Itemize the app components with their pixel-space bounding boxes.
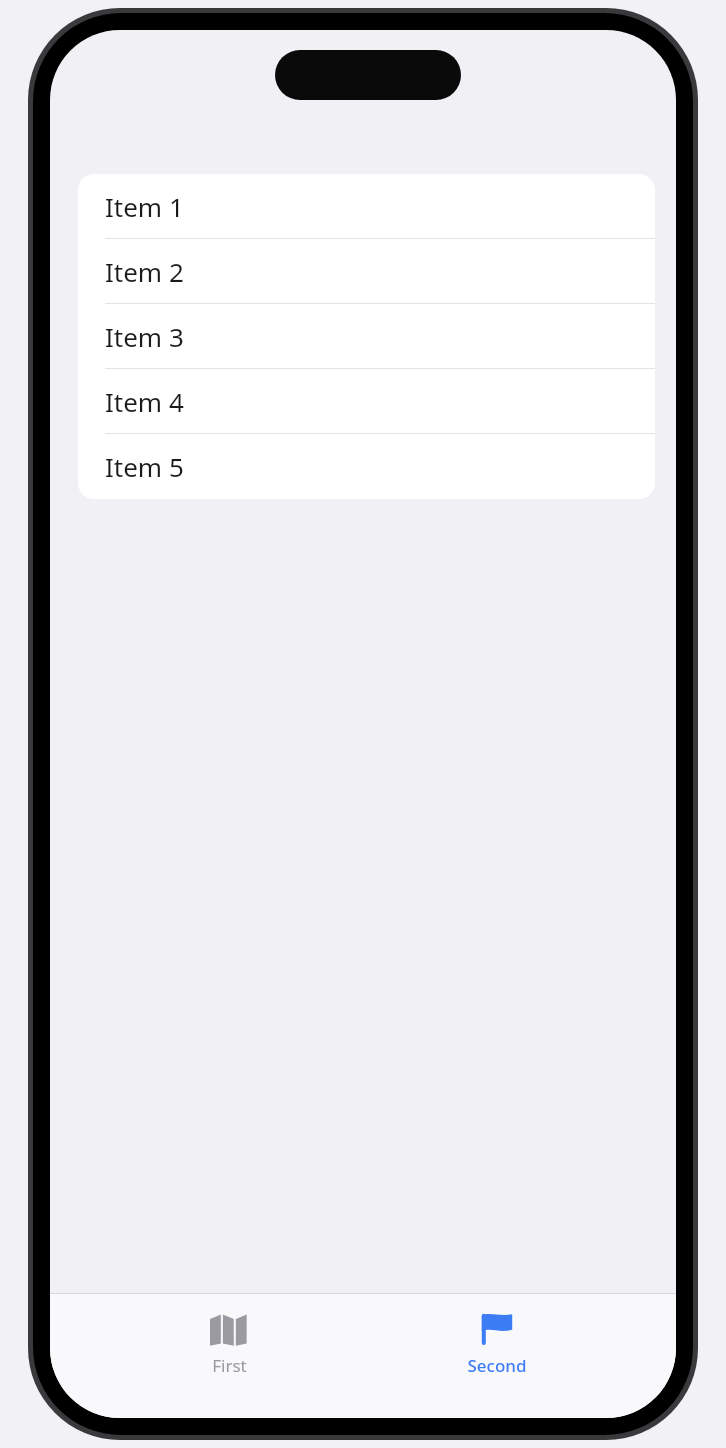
button[interactable]: Item 2 — [78, 239, 655, 304]
staticText: Item 3 — [105, 319, 184, 354]
button[interactable]: First tab, map — [139, 1294, 319, 1418]
button[interactable]: Item 5 — [78, 434, 655, 499]
staticText: Item 5 — [105, 449, 184, 484]
staticText: Item 4 — [105, 384, 184, 419]
staticText: Second — [467, 1354, 527, 1377]
button[interactable]: Item 1 — [78, 174, 655, 239]
button[interactable]: Item 3 — [78, 304, 655, 369]
staticText: Item 1 — [105, 189, 184, 224]
button[interactable]: Second tab, flag — [407, 1294, 587, 1418]
staticText: First — [212, 1354, 247, 1377]
button[interactable]: Item 4 — [78, 369, 655, 434]
staticText: Item 2 — [105, 254, 184, 289]
